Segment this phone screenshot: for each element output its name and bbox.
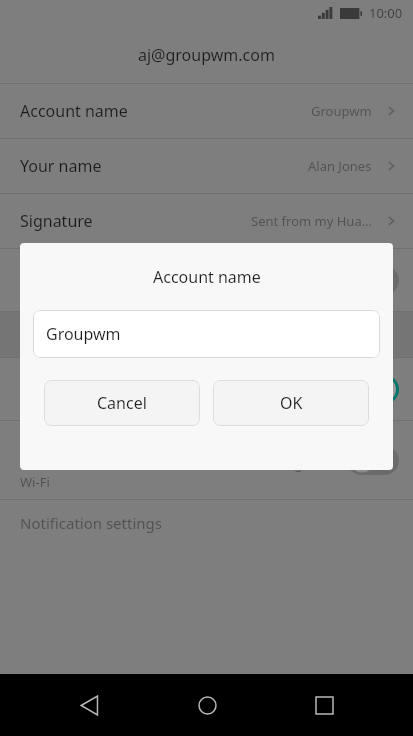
staticText: Groupwm bbox=[46, 323, 121, 345]
button[interactable]: OK bbox=[213, 380, 369, 426]
staticText: Cancel bbox=[97, 392, 147, 414]
button[interactable]: Account name bbox=[0, 84, 413, 138]
button[interactable]: On bbox=[347, 375, 399, 404]
button[interactable]: Off bbox=[347, 446, 399, 475]
staticText: Auto-download attachments to recent mess… bbox=[20, 455, 337, 491]
button[interactable]: Sync contacts bbox=[0, 249, 413, 311]
button[interactable]: Recent apps bbox=[296, 677, 352, 733]
staticText: 10:00 bbox=[369, 4, 403, 22]
button[interactable]: Signature bbox=[0, 194, 413, 248]
staticText: Today, 10:00 bbox=[20, 393, 96, 411]
staticText: OK bbox=[280, 392, 303, 414]
button[interactable]: Off bbox=[347, 266, 399, 295]
staticText: Account name bbox=[153, 266, 261, 288]
staticText: aj@groupwm.com bbox=[138, 44, 275, 66]
staticText: Groupwm bbox=[311, 102, 372, 120]
button[interactable]: Your name bbox=[0, 139, 413, 193]
button[interactable]: Sync Email bbox=[0, 358, 413, 420]
button[interactable]: Home bbox=[179, 677, 235, 733]
staticText: Account name bbox=[20, 100, 128, 122]
button[interactable]: Groupwm bbox=[33, 310, 380, 358]
button[interactable]: Download attachments bbox=[0, 421, 413, 499]
staticText: Your name bbox=[20, 155, 102, 177]
staticText: Alan Jones bbox=[308, 157, 372, 175]
button[interactable]: Back bbox=[61, 677, 117, 733]
staticText: Signature bbox=[20, 210, 93, 232]
staticText: Sync Email bbox=[20, 367, 100, 389]
staticText: Sent from my Hua… bbox=[251, 212, 372, 230]
staticText: Notification settings bbox=[20, 513, 162, 533]
button[interactable]: Cancel bbox=[44, 380, 200, 426]
button[interactable]: Notification settings bbox=[0, 500, 413, 546]
